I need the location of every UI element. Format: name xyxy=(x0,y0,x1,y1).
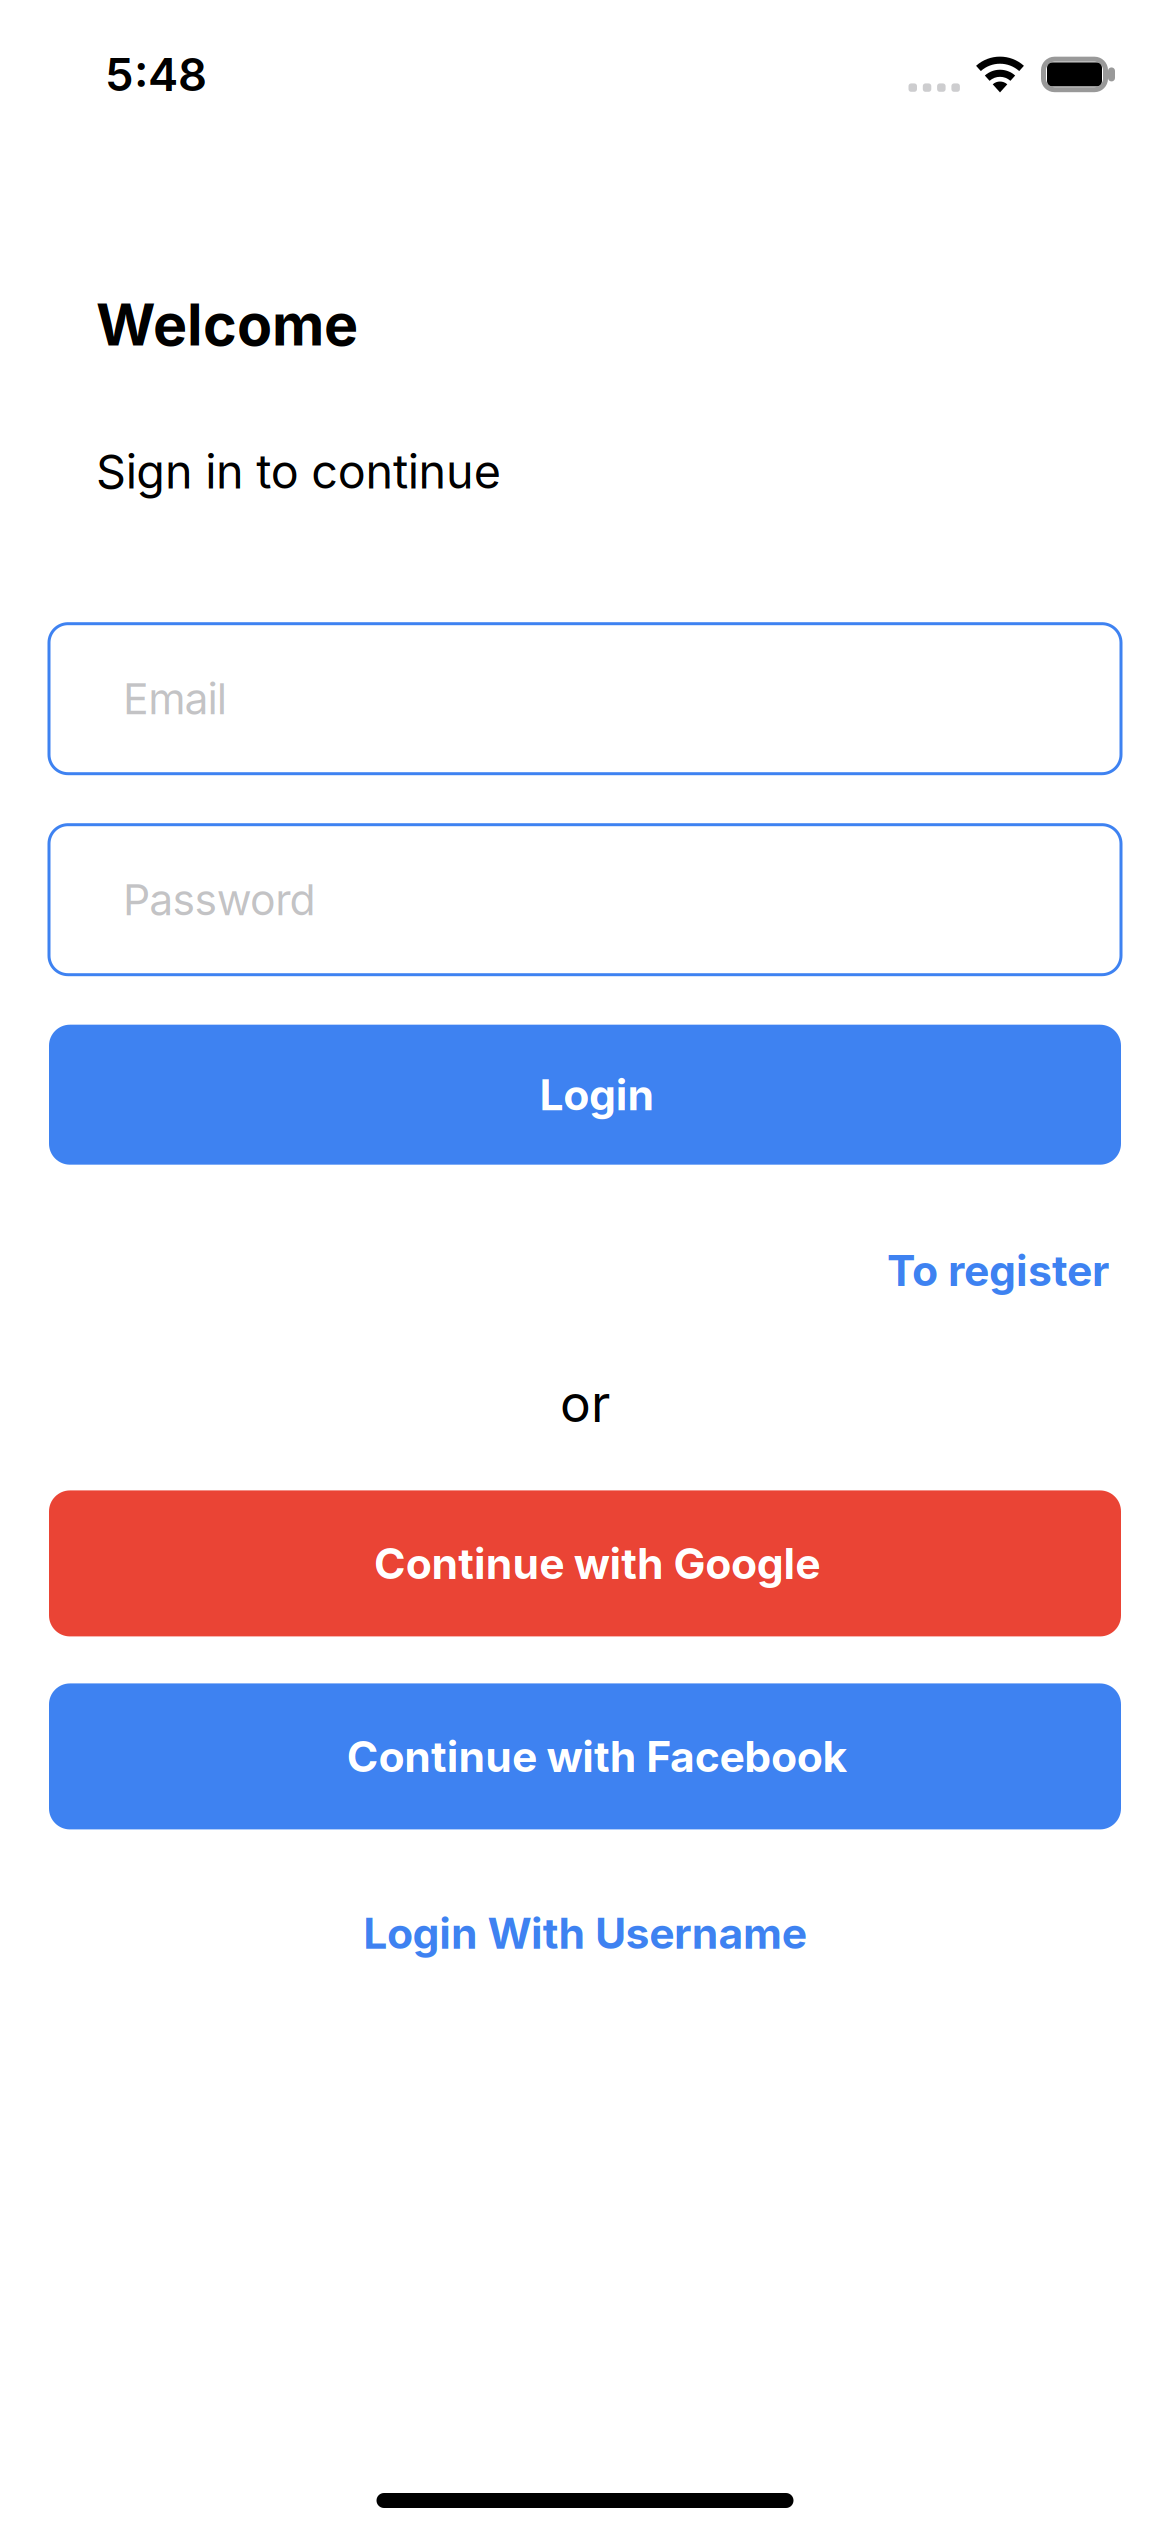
staticText: Email xyxy=(123,673,227,724)
button[interactable]: Login xyxy=(49,1025,1121,1165)
staticText: Login xyxy=(539,1069,654,1120)
button[interactable]: Continue with Google xyxy=(49,1490,1121,1636)
staticText: or xyxy=(560,1372,610,1434)
staticText: Continue with Facebook xyxy=(347,1731,847,1782)
staticText: To register xyxy=(887,1245,1109,1296)
button[interactable]: To register xyxy=(887,1245,1109,1296)
staticText: Sign in to continue xyxy=(96,443,501,500)
staticText: Login With Username xyxy=(363,1907,807,1959)
button[interactable]: Password xyxy=(49,825,1121,975)
staticText: Password xyxy=(123,874,315,925)
button[interactable]: Email xyxy=(49,624,1121,774)
staticText: Continue with Google xyxy=(374,1538,820,1589)
staticText: 5:48 xyxy=(105,47,207,102)
button[interactable]: Login With Username xyxy=(363,1907,807,1959)
button[interactable]: Continue with Facebook xyxy=(49,1683,1121,1829)
staticText: Welcome xyxy=(96,290,358,359)
